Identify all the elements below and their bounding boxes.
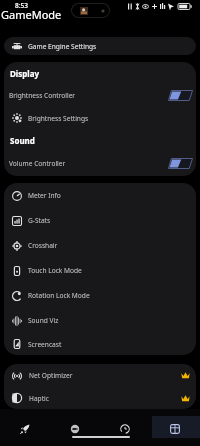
staticText: Screencast <box>28 340 62 349</box>
staticText: Volume Controller <box>9 159 66 168</box>
button[interactable]: Boost <box>0 409 50 446</box>
staticText: Sound <box>10 135 35 146</box>
button[interactable]: History <box>100 409 150 446</box>
button[interactable]: Meter Info <box>4 183 196 208</box>
button[interactable]: Brightness Controller <box>4 84 196 107</box>
button[interactable]: Sound Viz <box>4 308 196 333</box>
staticText: Brightness Controller <box>9 91 76 100</box>
button[interactable]: Screencast <box>4 333 196 355</box>
staticText: Touch Lock Mode <box>28 266 82 275</box>
button[interactable]: Dashboard <box>150 409 200 446</box>
staticText: GameMode <box>1 7 62 22</box>
staticText: Game Engine Settings <box>28 42 97 51</box>
button[interactable]: Volume Controller <box>4 152 196 175</box>
button[interactable]: Net Optimizer <box>4 364 196 387</box>
staticText: Rotation Lock Mode <box>28 291 90 300</box>
staticText: Meter Info <box>28 191 61 200</box>
staticText: Display <box>10 68 40 79</box>
button[interactable]: Crosshair <box>4 233 196 258</box>
staticText: 8:53 <box>15 1 28 10</box>
button[interactable]: Tools <box>50 409 100 446</box>
staticText: Crosshair <box>28 241 58 250</box>
button[interactable]: Game Engine Settings <box>4 37 196 55</box>
staticText: Brightness Settings <box>28 114 89 123</box>
button[interactable]: Brightness Settings <box>4 107 196 129</box>
staticText: Net Optimizer <box>29 371 73 380</box>
button[interactable]: Haptic <box>4 387 196 409</box>
button[interactable]: Rotation Lock Mode <box>4 283 196 308</box>
staticText: G-Stats <box>28 216 51 225</box>
staticText: Haptic <box>29 394 49 403</box>
button[interactable]: G-Stats <box>4 208 196 233</box>
button[interactable]: Touch Lock Mode <box>4 258 196 283</box>
staticText: Sound Viz <box>28 316 59 325</box>
